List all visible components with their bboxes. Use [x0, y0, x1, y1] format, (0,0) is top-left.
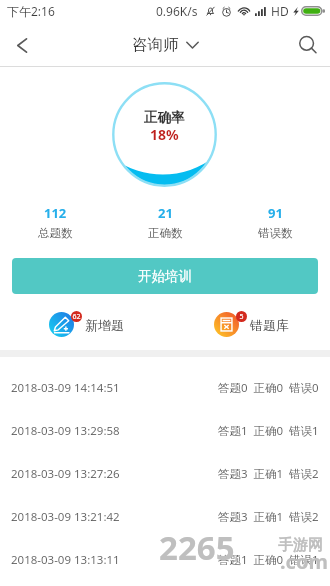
staticText: 5: [239, 312, 244, 322]
button[interactable]: 2018-03-09 14:14:51: [0, 366, 330, 409]
staticText: HD: [271, 3, 289, 19]
button[interactable]: 62: [47, 311, 157, 339]
button[interactable]: 91: [220, 201, 330, 243]
staticText: 91: [268, 204, 283, 222]
staticText: 2018-03-09 13:13:11: [11, 552, 120, 568]
staticText: 2018-03-09 14:14:51: [11, 380, 120, 396]
button[interactable]: 2018-03-09 13:13:11: [0, 538, 330, 581]
staticText: 答题3 正确1 错误2: [218, 466, 319, 482]
staticText: 正确率: [144, 109, 185, 126]
staticText: 112: [44, 204, 67, 222]
staticText: 错误数: [258, 226, 293, 240]
button[interactable]: 咨询师: [126, 29, 205, 61]
staticText: 新增题: [85, 317, 124, 333]
button[interactable]: 5: [212, 311, 322, 339]
staticText: 咨询师: [132, 35, 179, 55]
staticText: 2265: [159, 525, 235, 570]
staticText: 2018-03-09 13:27:26: [11, 466, 120, 482]
staticText: 2018-03-09 13:29:58: [11, 423, 120, 439]
button[interactable]: 2018-03-09 13:27:26: [0, 452, 330, 495]
button[interactable]: 2018-03-09 13:21:42: [0, 495, 330, 538]
staticText: 手游网: [278, 536, 323, 555]
staticText: 答题1 正确0 错误1: [218, 552, 319, 568]
button[interactable]: 112: [0, 201, 110, 243]
button[interactable]: 21: [110, 201, 220, 243]
staticText: 21: [158, 204, 173, 222]
staticText: 18%: [150, 125, 179, 144]
button[interactable]: Search: [286, 23, 330, 67]
staticText: 答题3 正确1 错误2: [218, 509, 319, 525]
staticText: 2018-03-09 13:21:42: [11, 509, 120, 525]
staticText: 答题1 正确0 错误1: [218, 423, 319, 439]
staticText: 下午2:16: [7, 3, 55, 19]
staticText: 正确数: [148, 226, 183, 240]
button[interactable]: 开始培训: [12, 258, 318, 294]
staticText: 62: [72, 312, 81, 322]
staticText: 0.96K/s: [156, 3, 198, 19]
staticText: 错题库: [250, 317, 289, 333]
staticText: 答题0 正确0 错误0: [218, 380, 319, 396]
staticText: 总题数: [38, 226, 73, 240]
staticText: 开始培训: [138, 268, 192, 285]
button[interactable]: 2018-03-09 13:29:58: [0, 409, 330, 452]
button[interactable]: Back: [0, 23, 44, 67]
staticText: .com: [280, 548, 328, 575]
